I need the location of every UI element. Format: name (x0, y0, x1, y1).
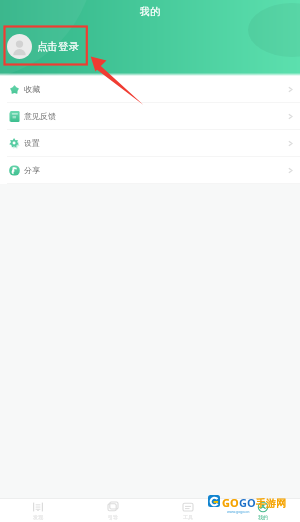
button[interactable]: 引导 (75, 499, 150, 522)
button[interactable]: 设置 (0, 130, 300, 157)
staticText: GO (222, 495, 239, 510)
staticText: 我的 (140, 5, 160, 18)
staticText: 我的 (258, 514, 268, 520)
staticText: www.gogo.cn (227, 509, 250, 514)
staticText: 点击登录 (37, 40, 79, 53)
staticText: 设置 (24, 138, 40, 148)
staticText: 发现 (33, 514, 43, 520)
staticText: GO (239, 495, 256, 510)
staticText: 手游网 (256, 497, 286, 510)
button[interactable]: 工具 (150, 499, 225, 522)
staticText: 分享 (24, 165, 40, 175)
button[interactable]: 点击登录 (7, 34, 79, 59)
button[interactable]: 分享 (0, 157, 300, 184)
staticText: 工具 (183, 514, 193, 520)
button[interactable]: 发现 (0, 499, 75, 522)
button[interactable]: 意见反馈 (0, 103, 300, 130)
staticText: 收藏 (24, 84, 40, 94)
button[interactable]: 我的 (225, 499, 300, 522)
staticText: 引导 (108, 514, 118, 520)
button[interactable]: 收藏 (0, 76, 300, 103)
staticText: 意见反馈 (24, 111, 56, 121)
